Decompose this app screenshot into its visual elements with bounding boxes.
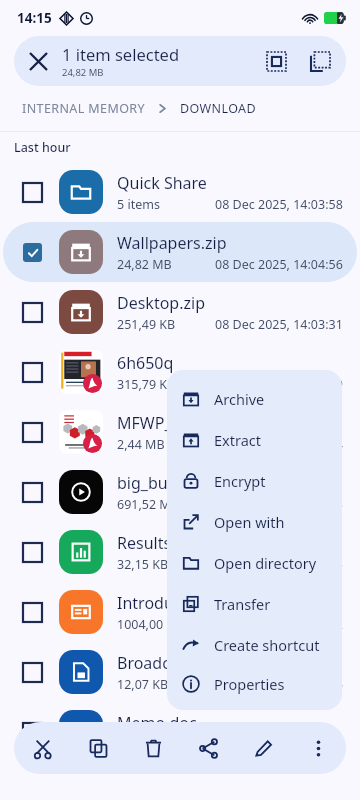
staticText: Open directory bbox=[214, 553, 317, 573]
button[interactable]: Broadcast bbox=[3, 642, 357, 702]
staticText: Desktop.zip bbox=[117, 292, 205, 314]
staticText: Encrypt bbox=[214, 471, 266, 491]
staticText: 08 Dec 2025, 14:04:56 bbox=[215, 256, 343, 273]
button[interactable]: Delete bbox=[126, 722, 181, 774]
staticText: 315,79 KB bbox=[117, 376, 176, 393]
staticText: 32,15 KB bbox=[117, 556, 169, 573]
button[interactable]: Share bbox=[181, 722, 236, 774]
staticText: Broadcast bbox=[117, 652, 193, 674]
staticText: Results bbox=[117, 532, 172, 554]
button[interactable]: Transfer bbox=[167, 583, 342, 624]
staticText: 08 Dec 2025, 13:33:06 bbox=[215, 676, 343, 693]
staticText: Create shortcut bbox=[214, 635, 320, 655]
staticText: 1004,00 bbox=[117, 616, 164, 633]
staticText: Transfer bbox=[214, 594, 271, 614]
staticText: 251,49 KB bbox=[117, 316, 176, 333]
staticText: 6h650q bbox=[117, 352, 174, 374]
staticText: Memo.doc bbox=[117, 712, 197, 734]
staticText: 24,82 MB bbox=[117, 256, 172, 273]
staticText: 08 Dec 2025, 14:03:31 bbox=[215, 316, 343, 333]
button[interactable]: Properties bbox=[167, 665, 342, 702]
button[interactable]: Cut bbox=[14, 722, 70, 774]
staticText: INTERNAL MEMORY bbox=[22, 100, 145, 117]
button[interactable]: DOWNLOAD bbox=[178, 96, 259, 121]
button[interactable]: Rename bbox=[236, 722, 291, 774]
staticText: Archive bbox=[214, 389, 265, 409]
staticText: Quick Share bbox=[117, 172, 207, 194]
button[interactable]: Select all bbox=[254, 39, 298, 83]
button[interactable]: Desktop.zip bbox=[3, 282, 357, 342]
staticText: MFWP_R bbox=[117, 412, 182, 434]
button[interactable]: Copy bbox=[70, 722, 126, 774]
button[interactable]: Introduc bbox=[3, 582, 357, 642]
button[interactable]: Extract bbox=[167, 419, 342, 460]
staticText: 5 items bbox=[117, 196, 160, 213]
staticText: 08 Dec 2025, 13:52:04 bbox=[215, 436, 343, 453]
staticText: Last hour bbox=[14, 139, 71, 156]
staticText: 08 Dec 2025, 14:03:58 bbox=[215, 196, 343, 213]
button[interactable]: Open with bbox=[167, 501, 342, 542]
staticText: 12,07 KB bbox=[117, 676, 169, 693]
staticText: 24,82 MB bbox=[62, 66, 104, 79]
button[interactable]: Open directory bbox=[167, 542, 342, 583]
staticText: 1 item selected bbox=[62, 43, 180, 65]
button[interactable]: Deselect bbox=[298, 39, 342, 83]
button[interactable]: INTERNAL MEMORY bbox=[20, 96, 147, 121]
button[interactable]: Create shortcut bbox=[167, 624, 342, 665]
staticText: Properties bbox=[214, 674, 285, 694]
staticText: Open with bbox=[214, 512, 285, 532]
button[interactable]: big_buck bbox=[3, 462, 357, 522]
button[interactable]: Results bbox=[3, 522, 357, 582]
staticText: 691,52 MB bbox=[117, 496, 179, 513]
staticText: 08 Dec 2025, 13:29:47 bbox=[215, 736, 343, 753]
button[interactable]: Quick Share bbox=[3, 162, 357, 222]
button[interactable]: Encrypt bbox=[167, 460, 342, 501]
staticText: big_buck bbox=[117, 472, 184, 494]
staticText: 2,44 MB bbox=[117, 436, 165, 453]
staticText: 08 Dec 2025, 13:44:15 bbox=[215, 556, 343, 573]
staticText: 7,73 KB bbox=[117, 736, 161, 753]
button[interactable]: MFWP_R bbox=[3, 402, 357, 462]
staticText: DOWNLOAD bbox=[180, 100, 257, 117]
button[interactable]: Archive bbox=[167, 378, 342, 419]
staticText: Introduc bbox=[117, 592, 182, 614]
button[interactable]: Wallpapers.zip bbox=[3, 222, 357, 282]
button[interactable]: Close selection bbox=[14, 37, 62, 85]
staticText: Extract bbox=[214, 430, 261, 450]
staticText: 14:15 bbox=[17, 9, 52, 27]
button[interactable]: Memo.doc bbox=[3, 702, 357, 762]
staticText: Wallpapers.zip bbox=[117, 232, 227, 254]
button[interactable]: More options bbox=[291, 722, 346, 774]
button[interactable]: 6h650q bbox=[3, 342, 357, 402]
